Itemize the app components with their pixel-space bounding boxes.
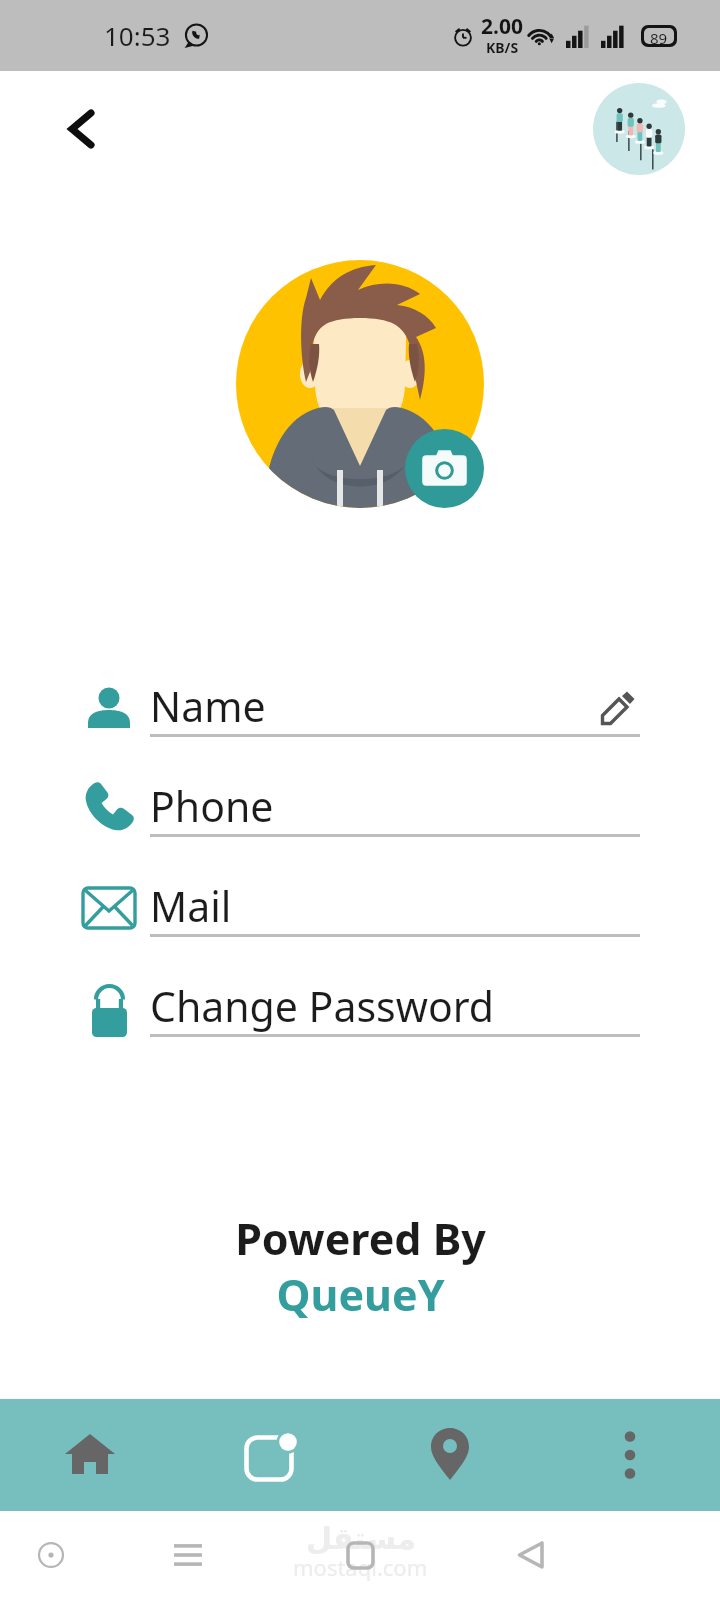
button[interactable]: Edit name <box>587 677 649 739</box>
button[interactable]: Recent apps <box>158 1525 218 1585</box>
button[interactable]: Home <box>0 1399 180 1511</box>
button[interactable]: Profile <box>593 83 685 175</box>
button[interactable]: Queue <box>180 1399 360 1511</box>
button[interactable]: Back <box>48 98 110 160</box>
button[interactable]: Back <box>501 1525 561 1585</box>
staticText: 2.00 <box>481 12 523 41</box>
button[interactable]: More <box>540 1399 720 1511</box>
staticText: Mail <box>150 878 232 934</box>
staticText: Change Password <box>150 978 495 1034</box>
staticText: mostaql.com <box>293 1552 428 1582</box>
staticText: 89 <box>650 28 668 44</box>
button[interactable]: Name <box>0 642 720 742</box>
button[interactable]: Change Password <box>0 942 720 1042</box>
staticText: Powered By <box>235 1209 486 1268</box>
staticText: 10:53 <box>104 18 171 53</box>
button[interactable]: Assistant <box>21 1525 81 1585</box>
staticText: QueueY <box>276 1265 445 1324</box>
button[interactable]: Mail <box>0 842 720 942</box>
staticText: Phone <box>150 778 274 834</box>
button[interactable]: Location <box>360 1399 540 1511</box>
staticText: KB/S <box>486 38 519 57</box>
button[interactable]: Change photo <box>405 429 484 508</box>
staticText: Name <box>150 678 266 734</box>
button[interactable]: Phone <box>0 742 720 842</box>
staticText: مستقل <box>306 1521 416 1556</box>
button[interactable]: Home <box>330 1525 390 1585</box>
